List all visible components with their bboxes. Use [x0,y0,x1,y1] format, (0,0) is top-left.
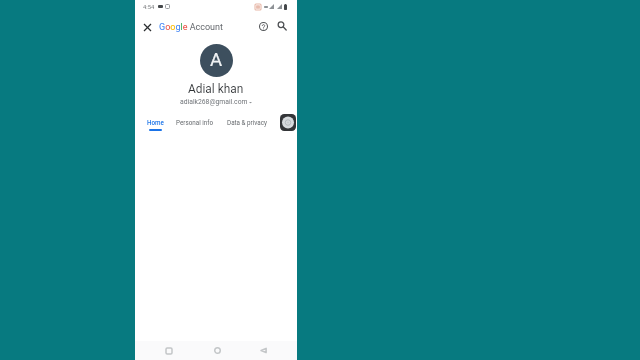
button[interactable]: Back [249,341,277,360]
button[interactable]: Personal info [173,118,216,133]
staticText: 4:54 [143,4,155,11]
staticText: Home [147,119,164,126]
button[interactable]: Profile picture [200,44,233,77]
staticText: adialk268@gmail.com [180,98,248,106]
button[interactable]: Help [253,16,273,36]
staticText: Adial khan [188,82,244,96]
staticText: Personal info [176,119,214,126]
button[interactable]: Search [272,16,292,36]
button[interactable]: Data & privacy [222,118,271,133]
staticText: A [210,49,223,71]
button[interactable]: Close [137,17,157,37]
staticText: Google Account [159,22,223,33]
button[interactable]: Home [144,118,167,133]
button[interactable]: Recent apps [155,341,183,360]
button[interactable]: Home [203,341,231,360]
button[interactable]: adialk268@gmail.com [178,98,254,106]
staticText: Data & privacy [227,119,267,126]
